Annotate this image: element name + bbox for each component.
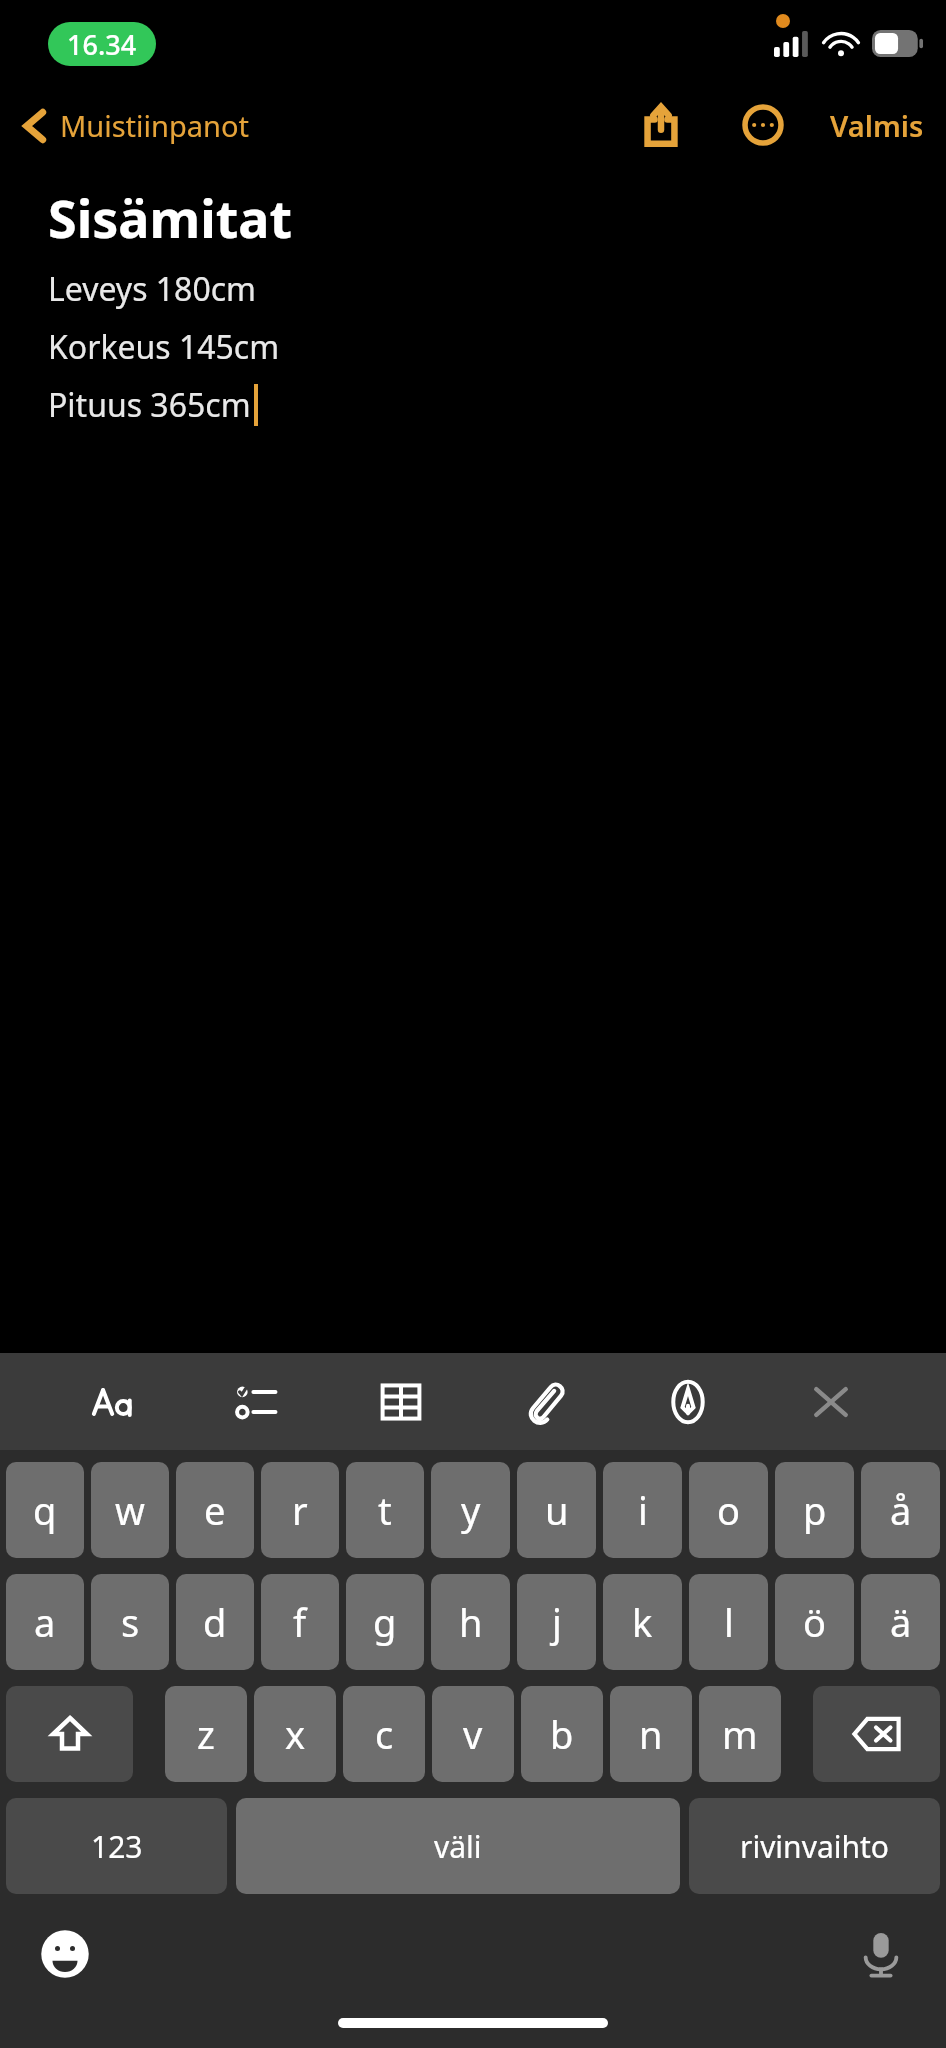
staticText: Pituus 365cm <box>48 383 251 427</box>
button[interactable]: j <box>517 1574 596 1670</box>
staticText: Valmis <box>830 106 924 145</box>
button[interactable]: Backspace <box>813 1686 940 1782</box>
button[interactable]: Table <box>363 1364 439 1440</box>
button[interactable]: ö <box>775 1574 854 1670</box>
staticText: ä <box>890 1596 912 1648</box>
button[interactable]: a <box>6 1574 84 1670</box>
button[interactable]: g <box>346 1574 424 1670</box>
button[interactable]: h <box>431 1574 510 1670</box>
button[interactable]: Valmis <box>826 98 928 153</box>
button[interactable]: Text format <box>77 1364 153 1440</box>
button[interactable]: Dictation <box>850 1923 912 1985</box>
staticText: x <box>285 1708 306 1760</box>
staticText: å <box>890 1484 912 1536</box>
staticText: q <box>33 1484 57 1536</box>
staticText: c <box>375 1708 394 1760</box>
button[interactable]: Markup <box>650 1364 726 1440</box>
staticText: rivinvaihto <box>740 1826 889 1867</box>
staticText: w <box>115 1484 145 1536</box>
button[interactable]: Close keyboard <box>793 1364 869 1440</box>
button[interactable]: m <box>699 1686 781 1782</box>
staticText: b <box>550 1708 574 1760</box>
staticText: n <box>639 1708 663 1760</box>
button[interactable]: y <box>431 1462 510 1558</box>
button[interactable]: Shift <box>6 1686 133 1782</box>
staticText: h <box>459 1596 483 1648</box>
staticText: z <box>197 1708 215 1760</box>
staticText: 16.34 <box>67 26 137 63</box>
button[interactable]: ä <box>861 1574 940 1670</box>
button[interactable]: k <box>603 1574 682 1670</box>
button[interactable]: t <box>346 1462 424 1558</box>
staticText: ö <box>803 1596 826 1648</box>
staticText: o <box>717 1484 740 1536</box>
staticText: t <box>378 1484 392 1536</box>
staticText: s <box>121 1596 140 1648</box>
button[interactable]: b <box>521 1686 603 1782</box>
staticText: r <box>292 1484 308 1536</box>
button[interactable]: More options <box>734 96 792 154</box>
button[interactable]: f <box>261 1574 339 1670</box>
button[interactable]: u <box>517 1462 596 1558</box>
button[interactable]: x <box>254 1686 336 1782</box>
staticText: g <box>373 1596 397 1648</box>
staticText: väli <box>434 1826 482 1867</box>
staticText: p <box>803 1484 827 1536</box>
button[interactable]: c <box>343 1686 425 1782</box>
button[interactable]: rivinvaihto <box>689 1798 940 1894</box>
button[interactable]: å <box>861 1462 940 1558</box>
button[interactable]: z <box>165 1686 247 1782</box>
button[interactable]: i <box>603 1462 682 1558</box>
button[interactable]: r <box>261 1462 339 1558</box>
button[interactable]: väli <box>236 1798 680 1894</box>
staticText: e <box>204 1484 226 1536</box>
button[interactable]: o <box>689 1462 768 1558</box>
button[interactable]: p <box>775 1462 854 1558</box>
button[interactable]: Share <box>632 96 690 154</box>
staticText: m <box>722 1708 758 1760</box>
button[interactable]: n <box>610 1686 692 1782</box>
staticText: f <box>293 1596 307 1648</box>
staticText: l <box>724 1596 734 1648</box>
staticText: i <box>638 1484 648 1536</box>
button[interactable]: l <box>689 1574 768 1670</box>
button[interactable]: Emoji <box>34 1923 96 1985</box>
staticText: a <box>34 1596 56 1648</box>
button[interactable]: v <box>432 1686 514 1782</box>
staticText: y <box>461 1484 481 1536</box>
staticText: k <box>632 1596 653 1648</box>
button[interactable]: Checklist <box>220 1364 296 1440</box>
staticText: 123 <box>91 1826 143 1867</box>
staticText: u <box>545 1484 569 1536</box>
staticText: v <box>463 1708 483 1760</box>
button[interactable]: e <box>176 1462 254 1558</box>
button[interactable]: w <box>91 1462 169 1558</box>
staticText: Sisämitat <box>48 182 292 253</box>
staticText: Muistiinpanot <box>60 106 249 145</box>
button[interactable]: s <box>91 1574 169 1670</box>
button[interactable]: q <box>6 1462 84 1558</box>
button[interactable]: Attach <box>507 1364 583 1440</box>
button[interactable]: d <box>176 1574 254 1670</box>
staticText: j <box>552 1596 562 1648</box>
staticText: Korkeus 145cm <box>48 325 280 369</box>
button[interactable]: Muistiinpanot <box>18 100 255 151</box>
button[interactable]: 123 <box>6 1798 227 1894</box>
staticText: Leveys 180cm <box>48 267 257 311</box>
staticText: d <box>203 1596 227 1648</box>
